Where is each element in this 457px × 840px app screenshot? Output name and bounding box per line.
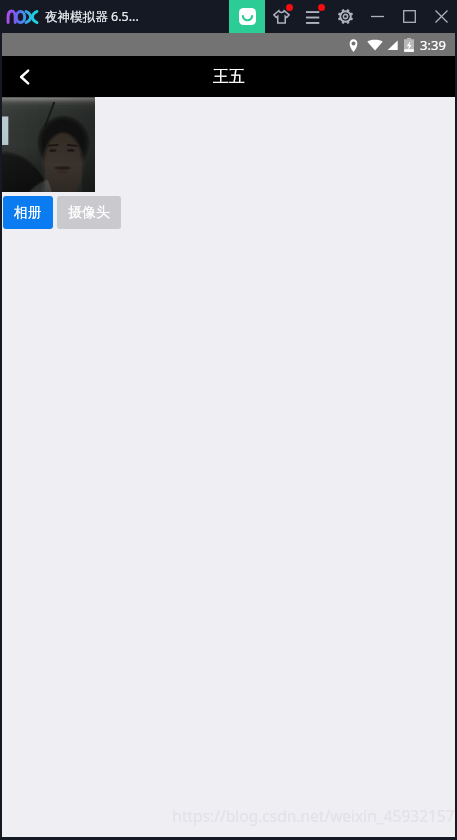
button[interactable]: Maximize: [393, 0, 425, 33]
button[interactable]: Theme: [265, 0, 297, 33]
staticText: 相册: [14, 204, 42, 222]
button[interactable]: Menu: [297, 0, 329, 33]
staticText: 王五: [213, 67, 245, 87]
staticText: https://blog.csdn.net/weixin_45932157: [172, 805, 455, 826]
button[interactable]: Close: [425, 0, 457, 33]
button[interactable]: Minimize: [361, 0, 393, 33]
button[interactable]: 相册: [3, 196, 53, 229]
button[interactable]: Back: [2, 56, 48, 97]
button[interactable]: App store: [229, 0, 265, 33]
button[interactable]: 摄像头: [57, 196, 121, 229]
button[interactable]: Settings: [329, 0, 361, 33]
staticText: 夜神模拟器 6.5...: [45, 8, 139, 25]
staticText: 3:39: [420, 36, 446, 54]
staticText: 摄像头: [68, 204, 110, 222]
